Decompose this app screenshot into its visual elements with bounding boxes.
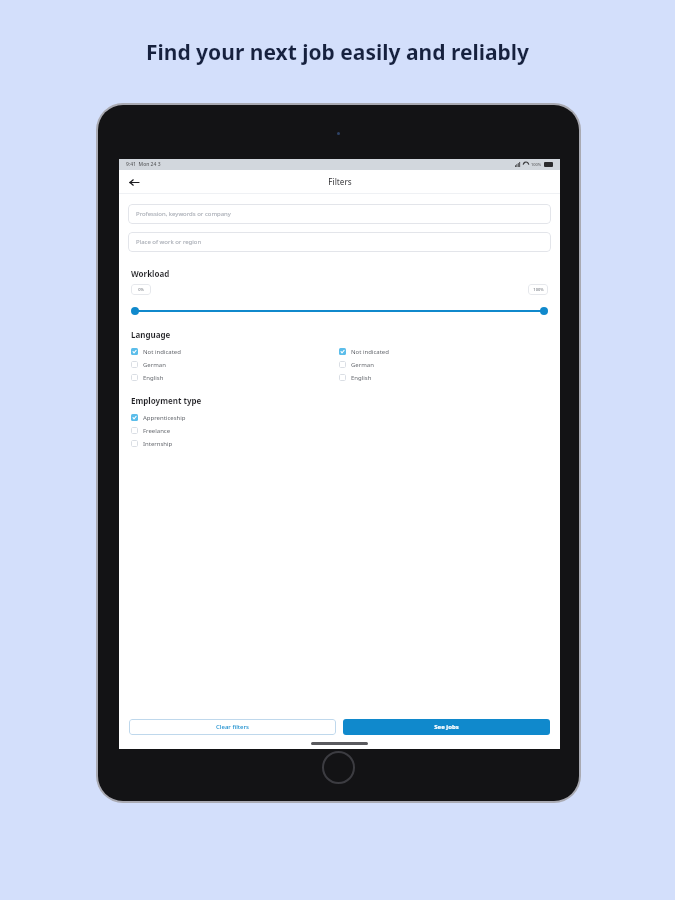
button[interactable]: Minimum workload xyxy=(131,307,139,315)
button[interactable]: See jobs xyxy=(343,719,550,735)
staticText: German xyxy=(143,361,166,369)
button[interactable]: Clear filters xyxy=(129,719,336,735)
staticText: Not indicated xyxy=(351,348,389,356)
button[interactable]: Back xyxy=(125,173,143,191)
button[interactable]: Maximum workload xyxy=(540,307,548,315)
button[interactable]: German xyxy=(131,358,339,371)
staticText: Profession, keywords or company xyxy=(136,210,231,218)
staticText: English xyxy=(351,374,372,382)
staticText: Not indicated xyxy=(143,348,181,356)
staticText: Language xyxy=(131,329,171,340)
staticText: 9:41 Mon 24 3 xyxy=(126,161,161,168)
staticText: Internship xyxy=(143,440,173,448)
staticText: 100% xyxy=(531,162,542,167)
staticText: Apprenticeship xyxy=(143,414,186,422)
staticText: English xyxy=(143,374,164,382)
button[interactable]: English xyxy=(339,371,548,384)
staticText: Workload xyxy=(131,268,170,279)
staticText: Employment type xyxy=(131,395,202,406)
staticText: Place of work or region xyxy=(136,238,202,246)
staticText: Freelance xyxy=(143,427,171,435)
staticText: Find your next job easily and reliably xyxy=(0,38,675,67)
staticText: 0% xyxy=(138,287,144,292)
staticText: See jobs xyxy=(434,723,459,731)
button[interactable]: Apprenticeship xyxy=(131,411,548,424)
staticText: Clear filters xyxy=(216,723,249,731)
button[interactable]: Profession, keywords or company xyxy=(128,204,551,224)
staticText: Filters xyxy=(328,176,352,187)
button[interactable]: Freelance xyxy=(131,424,548,437)
button[interactable]: Not indicated xyxy=(339,345,548,358)
button[interactable]: Not indicated xyxy=(131,345,339,358)
staticText: German xyxy=(351,361,374,369)
button[interactable]: English xyxy=(131,371,339,384)
button[interactable]: Place of work or region xyxy=(128,232,551,252)
button[interactable]: Internship xyxy=(131,437,548,450)
button[interactable]: German xyxy=(339,358,548,371)
staticText: 100% xyxy=(533,287,544,292)
